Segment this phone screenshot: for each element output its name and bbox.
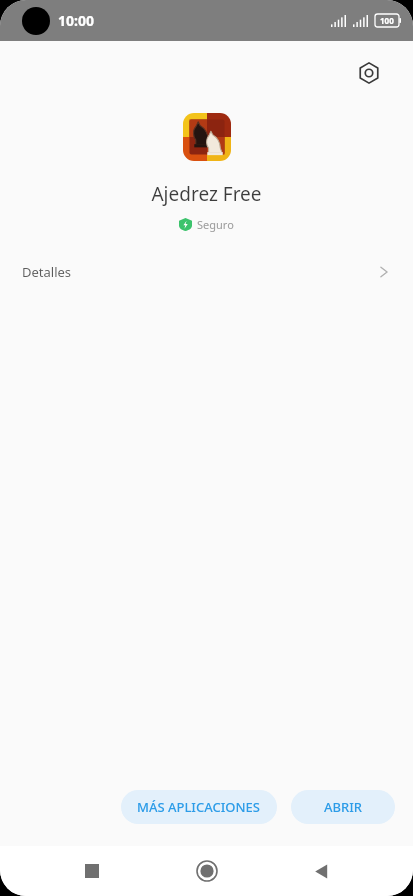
button[interactable]: Back (298, 848, 344, 894)
staticText: 10:00 (58, 11, 94, 30)
button[interactable]: MÁS APLICACIONES (121, 790, 277, 824)
staticText: Ajedrez Free (151, 181, 262, 207)
staticText: MÁS APLICACIONES (137, 798, 261, 816)
button[interactable]: Recent apps (69, 848, 115, 894)
button[interactable]: ABRIR (291, 790, 395, 824)
button[interactable]: Settings (347, 51, 391, 95)
staticText: ABRIR (324, 798, 363, 816)
button[interactable]: Home (184, 848, 230, 894)
staticText: 100 (380, 15, 394, 26)
staticText: Detalles (22, 263, 72, 281)
staticText: Seguro (197, 217, 234, 232)
button[interactable]: Detalles (0, 252, 413, 292)
